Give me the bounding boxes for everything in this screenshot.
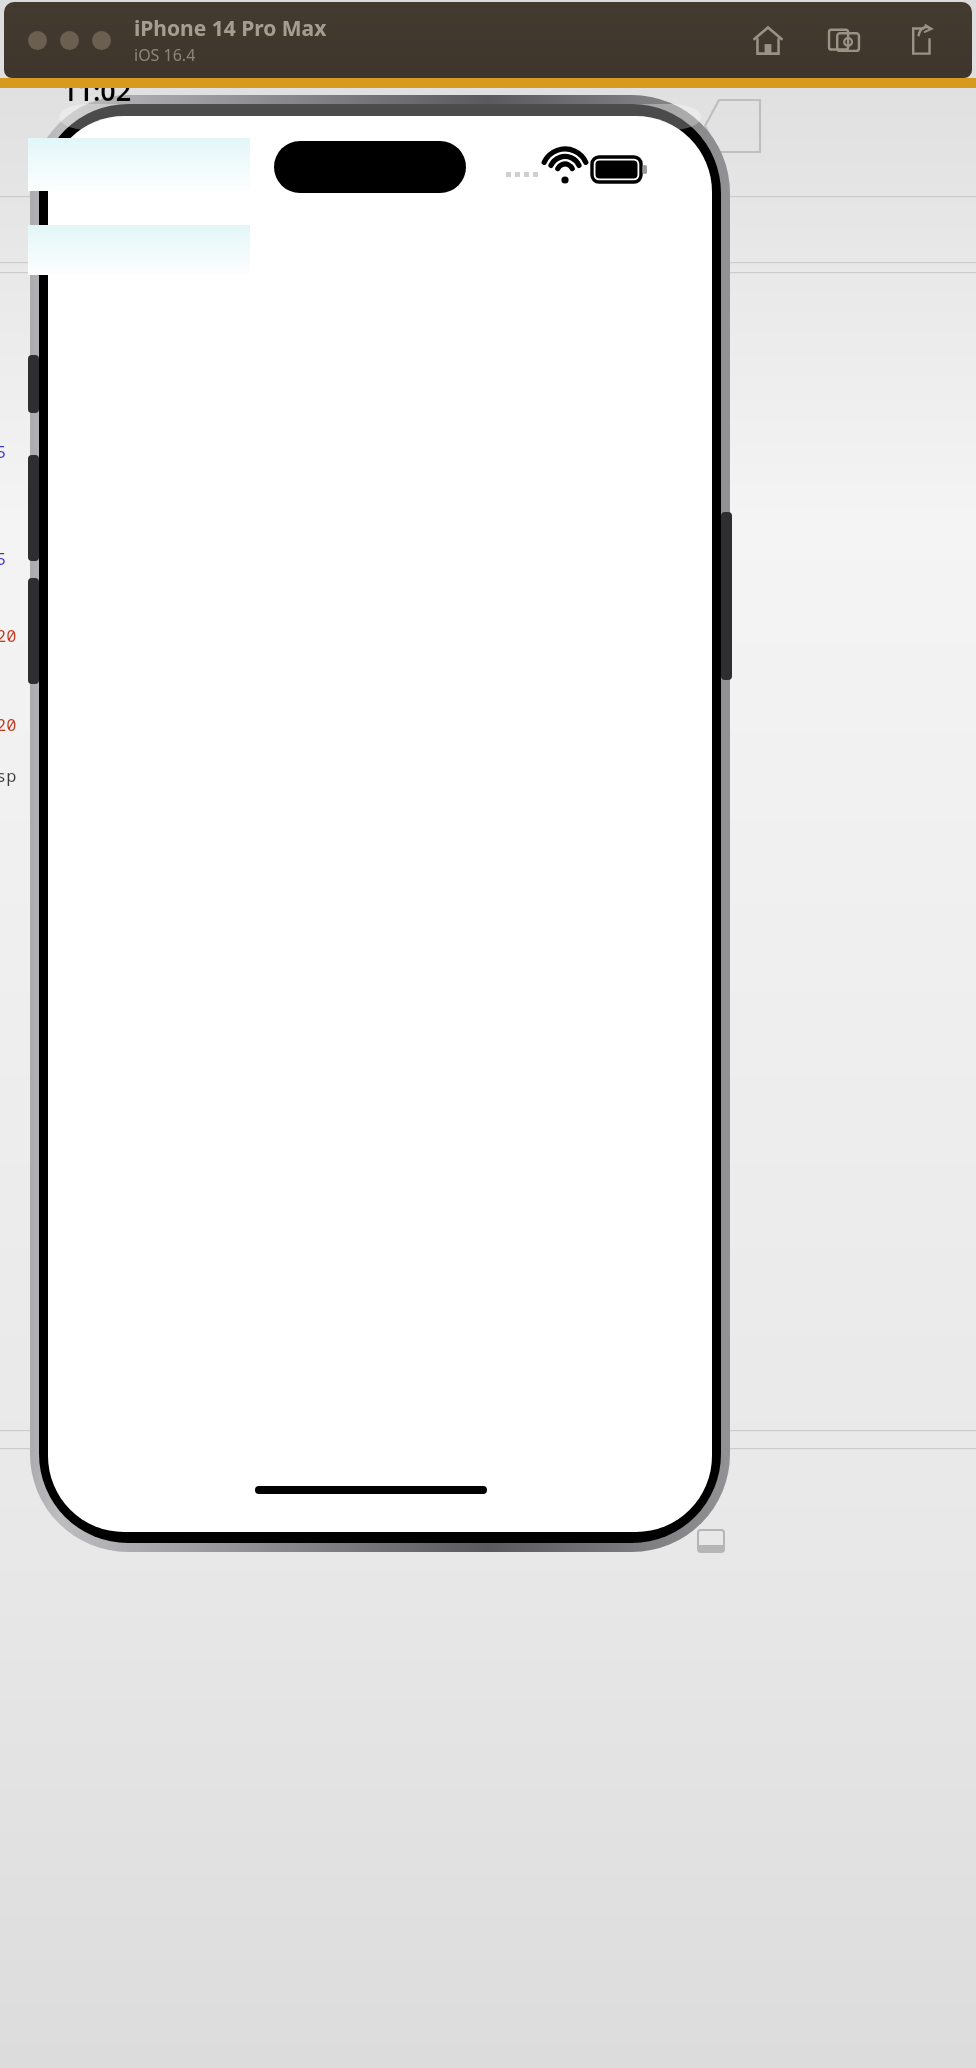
button[interactable]: Home <box>746 18 790 62</box>
staticText: 11:02 <box>62 72 132 109</box>
staticText: 20 <box>0 624 17 647</box>
button[interactable]: Close window <box>28 31 47 50</box>
button[interactable]: Share <box>898 18 942 62</box>
button[interactable] <box>28 225 250 275</box>
button[interactable]: Zoom window <box>92 31 111 50</box>
staticText: 20 <box>0 713 17 736</box>
button[interactable]: Minimize window <box>60 31 79 50</box>
staticText: 5 <box>0 440 7 463</box>
button[interactable] <box>28 138 250 191</box>
staticText: iPhone 14 Pro Max <box>134 14 327 43</box>
staticText: sp <box>0 764 17 787</box>
staticText: iOS 16.4 <box>134 44 196 66</box>
button[interactable]: Screenshot <box>822 18 866 62</box>
staticText: 5 <box>0 547 7 570</box>
